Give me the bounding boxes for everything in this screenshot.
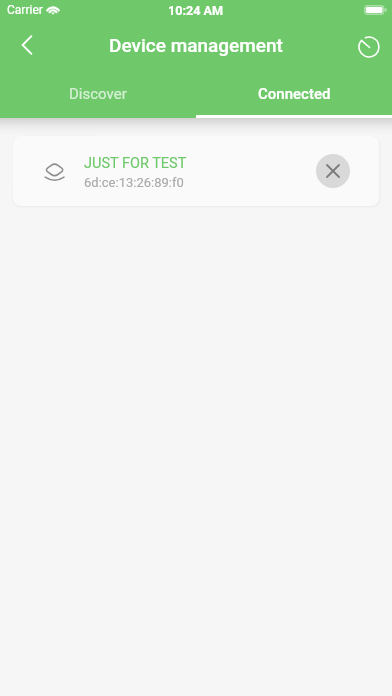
button[interactable]: Back xyxy=(0,24,44,67)
staticText: 6d:ce:13:26:89:f0 xyxy=(84,175,184,190)
staticText: Carrier xyxy=(7,3,43,17)
staticText: Connected xyxy=(258,85,331,103)
button[interactable]: JUST FOR TEST xyxy=(13,136,379,206)
button[interactable]: Scan history xyxy=(348,24,392,67)
staticText: 10:24 AM xyxy=(168,3,224,18)
staticText: Device management xyxy=(109,34,283,56)
button[interactable]: Disconnect xyxy=(316,154,350,188)
button[interactable]: Discover xyxy=(0,67,196,118)
staticText: JUST FOR TEST xyxy=(84,155,187,172)
button[interactable]: Connected xyxy=(196,67,392,118)
staticText: Discover xyxy=(69,85,127,103)
